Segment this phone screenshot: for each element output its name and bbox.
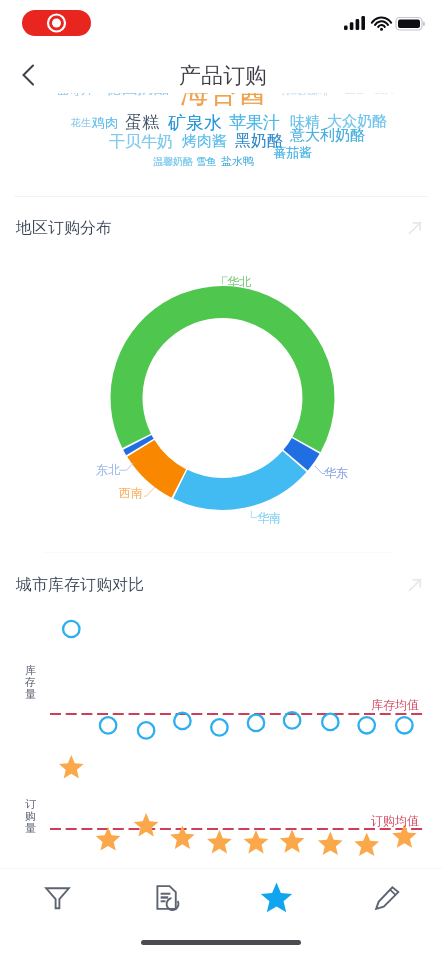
staticText: 温馨奶酪 xyxy=(153,155,193,168)
staticText: 干贝牛奶 xyxy=(109,132,173,152)
button[interactable]: Refresh report xyxy=(137,869,193,925)
staticText: 大众奶酪 xyxy=(327,112,387,131)
staticText: 矿泉水 xyxy=(168,112,222,135)
staticText: 雪鱼 xyxy=(196,155,216,168)
staticText: 烤肉酱 xyxy=(182,132,227,151)
staticText: 德国奶酪 xyxy=(106,78,170,98)
button[interactable]: Expand chart xyxy=(396,566,434,604)
staticText: 华北 xyxy=(227,274,251,289)
button[interactable]: Favorites xyxy=(248,869,304,925)
button[interactable]: Back xyxy=(8,55,48,95)
staticText: 苹果汁 xyxy=(229,112,280,133)
staticText: 意大利奶酪 xyxy=(290,126,365,145)
staticText: 花生 xyxy=(71,116,91,129)
staticText: 东北 xyxy=(96,462,120,477)
staticText: 味精 xyxy=(290,113,320,132)
button[interactable]: 城市库存订购对比 xyxy=(4,566,304,604)
staticText: 库存均值 xyxy=(371,697,419,712)
staticText: 地区订购分布 xyxy=(16,218,112,238)
button[interactable]: Edit xyxy=(359,869,415,925)
staticText: 三合一麦片 xyxy=(345,83,395,96)
staticText: 城市库存订购对比 xyxy=(16,575,144,595)
button[interactable]: Recording indicator xyxy=(22,10,91,36)
staticText: 产品订购 xyxy=(179,62,267,90)
staticText: 西南 xyxy=(119,485,143,500)
staticText: 浓缩咖啡 xyxy=(282,82,330,97)
staticText: 曲奇片 xyxy=(57,82,93,97)
staticText: 盐水鸭 xyxy=(221,154,254,168)
button[interactable]: 地区订购分布 xyxy=(4,209,304,247)
staticText: 蕃茄酱 xyxy=(273,144,312,160)
staticText: 华东 xyxy=(324,465,348,480)
button[interactable]: Filter xyxy=(29,869,85,925)
staticText: 库 存 量 xyxy=(25,663,36,701)
staticText: 海苔酱 xyxy=(180,74,267,111)
staticText: 华南 xyxy=(257,510,281,525)
staticText: 蛋糕 xyxy=(125,112,159,133)
button[interactable]: Expand chart xyxy=(396,209,434,247)
staticText: 订购均值 xyxy=(371,813,419,828)
staticText: 黑奶酪 xyxy=(235,131,283,151)
staticText: 鸡肉 xyxy=(92,114,118,130)
staticText: 订 购 量 xyxy=(25,797,36,835)
